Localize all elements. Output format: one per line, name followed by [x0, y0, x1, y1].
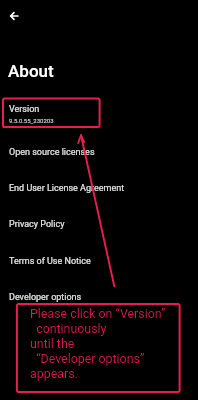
staticText: About	[8, 61, 54, 81]
staticText: Please click on “Version”	[30, 306, 166, 321]
staticText: appears.	[30, 366, 78, 381]
staticText: Terms of Use Notice	[9, 256, 91, 267]
staticText: continuously	[30, 321, 107, 336]
staticText: Open source licenses	[9, 147, 95, 158]
staticText: Version	[9, 104, 40, 115]
button[interactable]: End User License Agreement	[0, 175, 198, 203]
staticText: Privacy Policy	[9, 219, 65, 230]
button[interactable]: Back	[2, 4, 26, 28]
button[interactable]: Open source licenses	[0, 139, 198, 167]
staticText: 9.5.0.55_230203	[9, 117, 54, 124]
staticText: End User License Agreement	[9, 183, 125, 194]
staticText: “Developer options”	[30, 351, 145, 366]
button[interactable]: Terms of Use Notice	[0, 248, 198, 276]
staticText: Developer options	[9, 292, 82, 303]
button[interactable]: Privacy Policy	[0, 211, 198, 239]
button[interactable]: Version	[0, 98, 198, 128]
button[interactable]: Developer options	[0, 284, 198, 312]
staticText: until the	[30, 336, 75, 351]
